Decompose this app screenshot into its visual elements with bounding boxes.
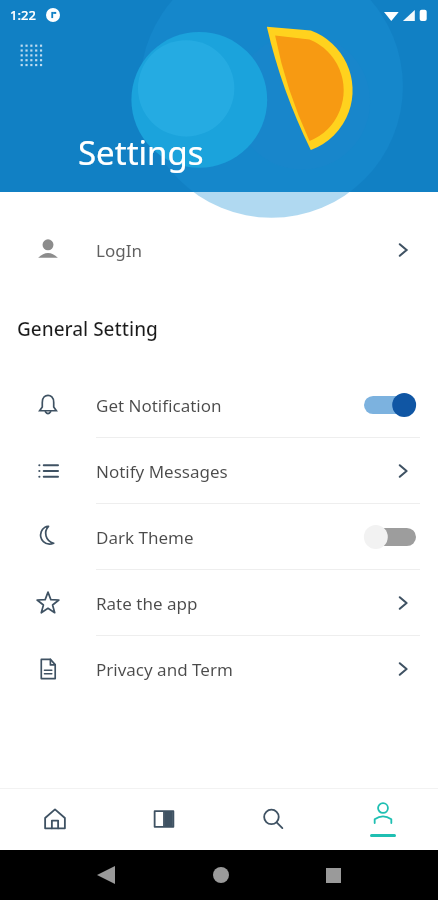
staticText: Dark Theme: [96, 526, 194, 549]
button[interactable]: Menu: [17, 41, 47, 71]
button[interactable]: Rate the app: [0, 570, 438, 636]
button[interactable]: Privacy and Term: [0, 636, 438, 702]
staticText: Get Notification: [96, 394, 222, 417]
button[interactable]: Notify Messages: [0, 438, 438, 504]
staticText: Notify Messages: [96, 460, 228, 483]
staticText: 1:22: [10, 6, 36, 24]
staticText: Rate the app: [96, 592, 198, 615]
staticText: LogIn: [96, 239, 142, 262]
button[interactable]: Dark Theme: [0, 504, 438, 570]
button[interactable]: LogIn: [0, 223, 438, 277]
button[interactable]: Profile: [328, 788, 438, 850]
staticText: General Setting: [17, 316, 158, 342]
button[interactable]: Search: [218, 788, 328, 850]
staticText: Privacy and Term: [96, 658, 233, 681]
staticText: Settings: [78, 130, 204, 175]
button[interactable]: Home: [0, 788, 109, 850]
button[interactable]: Get Notification: [0, 372, 438, 438]
button[interactable]: Library: [109, 788, 218, 850]
